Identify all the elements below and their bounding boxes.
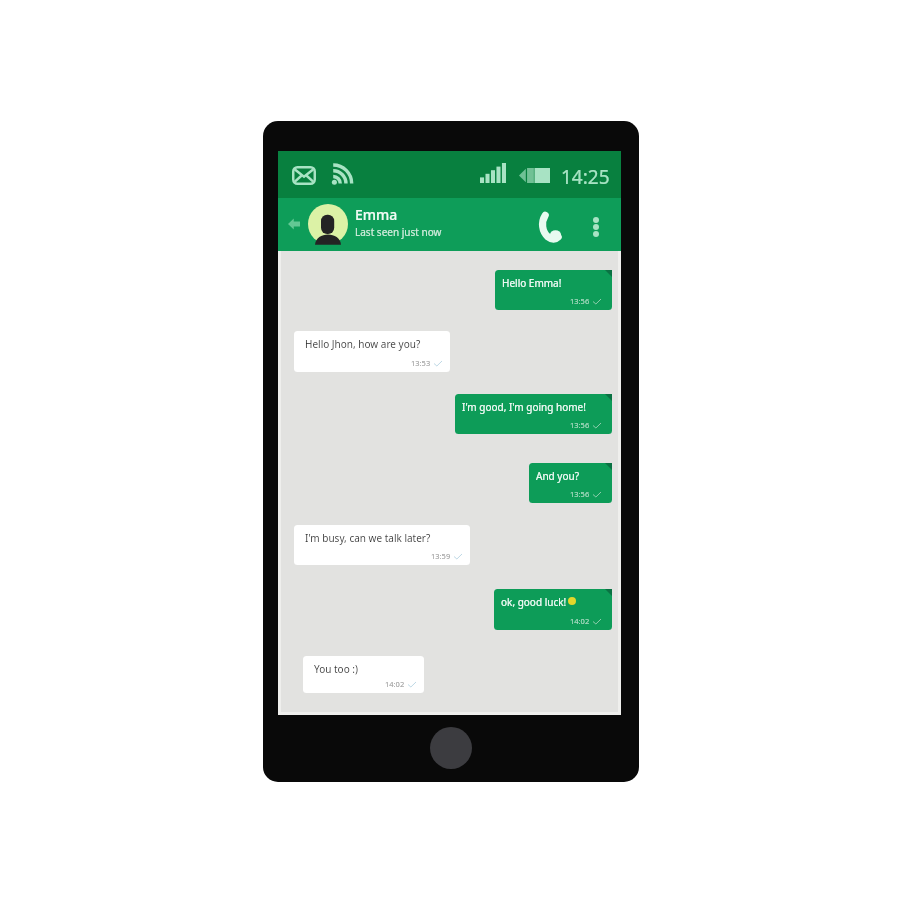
staticText: Last seen just now — [355, 225, 442, 239]
staticText: I'm busy, can we talk later? — [305, 531, 431, 545]
staticText: 14:25 — [561, 164, 610, 190]
button[interactable]: And you? — [529, 463, 612, 503]
button[interactable]: Call — [533, 205, 567, 247]
staticText: I'm good, I'm going home! — [462, 400, 586, 414]
staticText: 14:02 — [570, 616, 590, 626]
staticText: ok, good luck! — [501, 595, 567, 609]
staticText: You too :) — [314, 662, 358, 676]
button[interactable]: You too :) — [303, 656, 424, 693]
staticText: 13:53 — [411, 358, 431, 368]
button[interactable]: ok, good luck! — [494, 589, 612, 630]
staticText: 13:59 — [431, 551, 451, 561]
button[interactable]: Hello Emma! — [495, 270, 612, 310]
button[interactable]: I'm busy, can we talk later? — [294, 525, 470, 565]
staticText: Emma — [355, 205, 398, 224]
staticText: And you? — [536, 469, 579, 483]
staticText: 14:02 — [385, 679, 405, 689]
button[interactable]: Hello Jhon, how are you? — [294, 331, 450, 372]
button[interactable]: Home — [430, 727, 472, 769]
button[interactable]: More options — [582, 209, 610, 245]
staticText: Hello Jhon, how are you? — [305, 337, 421, 351]
button[interactable]: I'm good, I'm going home! — [455, 394, 612, 434]
staticText: 13:56 — [570, 420, 590, 430]
staticText: Hello Emma! — [502, 276, 562, 290]
staticText: 13:56 — [570, 489, 590, 499]
button[interactable]: Back — [282, 210, 306, 238]
staticText: 13:56 — [570, 296, 590, 306]
